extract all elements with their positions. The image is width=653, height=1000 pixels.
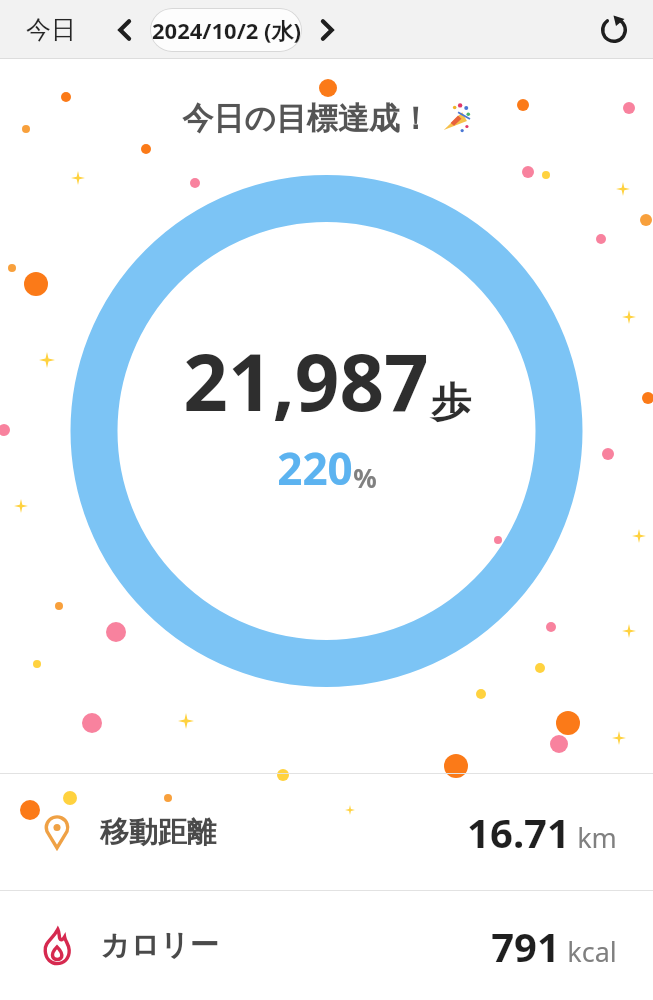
staticText: kcal (567, 933, 617, 970)
staticText: km (577, 819, 617, 856)
staticText: カロリー (100, 927, 219, 964)
button[interactable]: 今日 (18, 8, 84, 51)
button[interactable]: Previous day (108, 13, 142, 47)
staticText: 16.71 (467, 805, 570, 859)
staticText: 791 (491, 919, 560, 973)
staticText: % (353, 460, 377, 495)
staticText: 220 (277, 438, 353, 498)
button[interactable]: Next day (310, 13, 344, 47)
staticText: 今日の目標達成！ (182, 99, 431, 138)
staticText: 2024/10/2 (水) (152, 15, 301, 45)
staticText: 移動距離 (100, 814, 216, 851)
button[interactable]: Refresh (593, 9, 635, 51)
staticText: 今日 (26, 14, 76, 45)
staticText: 歩 (431, 377, 471, 427)
button[interactable]: 2024/10/2 (水) (150, 8, 302, 52)
staticText: 21,987 (183, 328, 429, 434)
button[interactable]: カロリー (0, 891, 653, 1000)
button[interactable]: 移動距離 (0, 774, 653, 890)
